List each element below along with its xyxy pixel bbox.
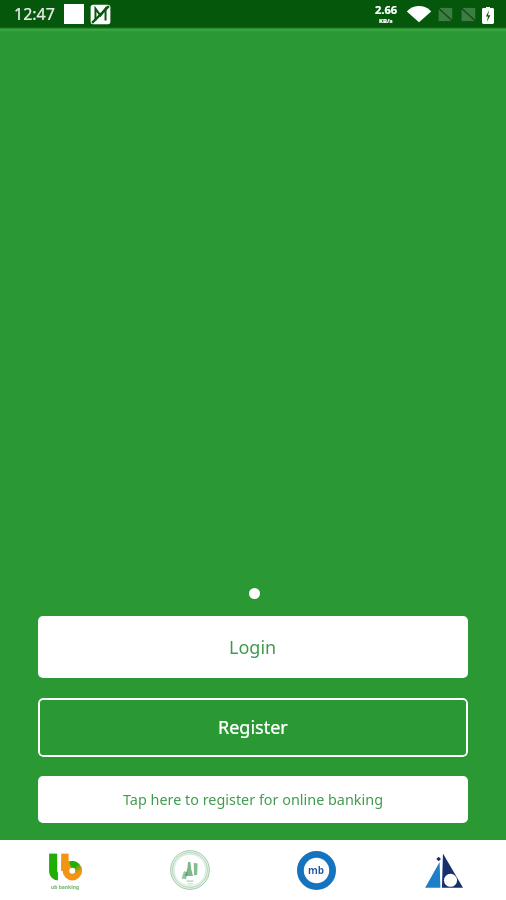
staticText: Register bbox=[218, 715, 288, 740]
button[interactable]: Login bbox=[38, 616, 468, 678]
staticText: Login bbox=[229, 635, 277, 660]
staticText: 2.66 bbox=[375, 2, 397, 17]
staticText: KB/s bbox=[379, 17, 393, 25]
staticText: 12:47 bbox=[14, 3, 55, 25]
staticText: Tap here to register for online banking bbox=[123, 790, 383, 810]
button[interactable]: UB Banking bbox=[0, 840, 126, 900]
button[interactable]: Register bbox=[38, 698, 468, 757]
staticText: ub banking bbox=[51, 884, 80, 891]
button[interactable]: Bank seal bbox=[126, 840, 252, 900]
button[interactable]: Tap here to register for online banking bbox=[38, 776, 468, 823]
button[interactable]: Mobile banking bbox=[252, 840, 379, 900]
staticText: mb bbox=[308, 863, 325, 877]
button[interactable]: Sail logo bbox=[379, 840, 506, 900]
